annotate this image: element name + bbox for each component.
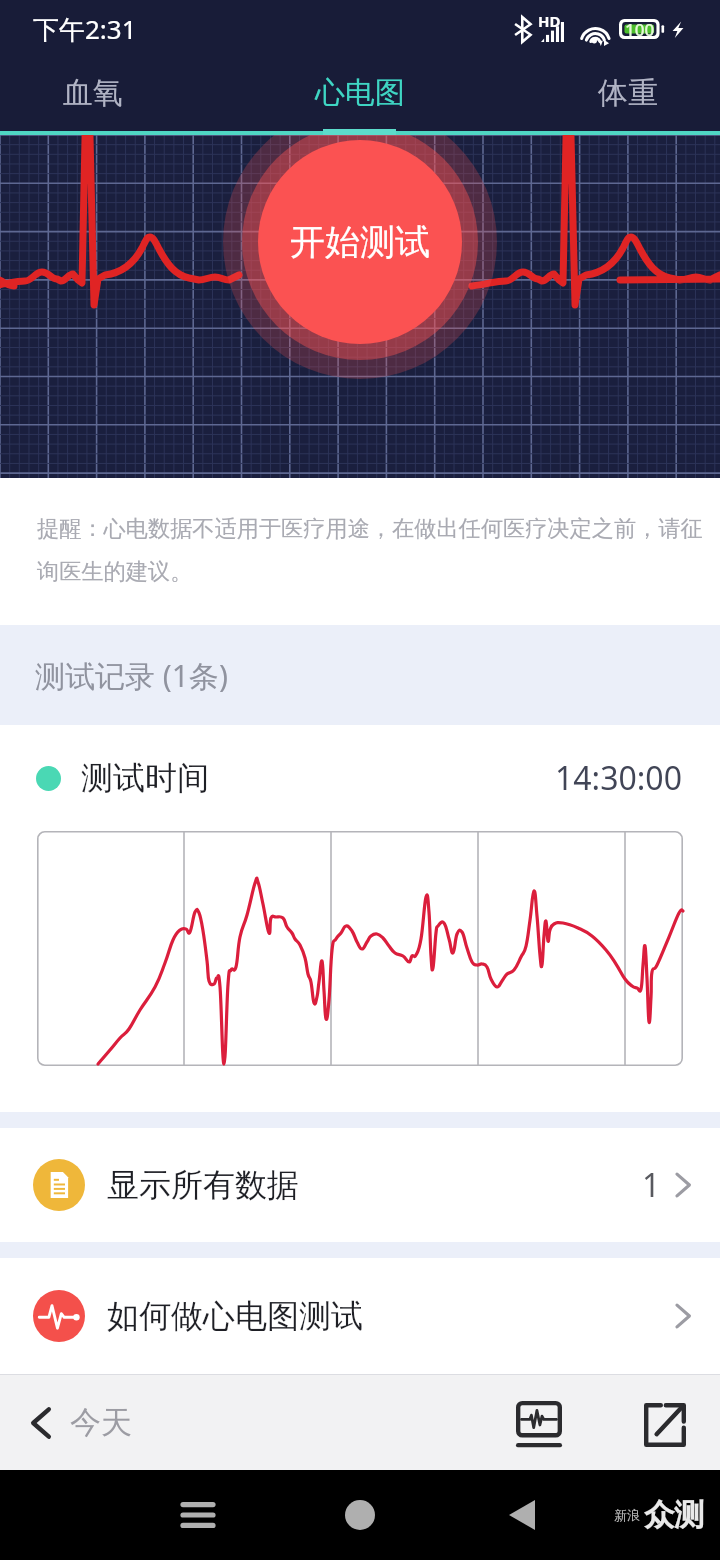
- staticText: 1: [642, 1163, 661, 1207]
- staticText: 血氧: [63, 74, 123, 112]
- staticText: 体重: [598, 74, 658, 112]
- button[interactable]: Share: [632, 1392, 698, 1458]
- staticText: 14:30:00: [555, 756, 682, 800]
- button[interactable]: 测试时间: [0, 725, 720, 831]
- staticText: 提醒：心电数据不适用于医疗用途，在做出任何医疗决定之前，请征询医生的建议。: [37, 515, 707, 586]
- button[interactable]: 血氧: [0, 58, 185, 127]
- button[interactable]: 如何做心电图测试: [0, 1258, 720, 1374]
- button[interactable]: 今天: [28, 1403, 132, 1442]
- button[interactable]: Recents: [165, 1482, 231, 1548]
- staticText: 众测: [644, 1496, 704, 1534]
- staticText: 显示所有数据: [107, 1165, 299, 1205]
- staticText: 100: [625, 18, 655, 41]
- button[interactable]: 显示所有数据: [0, 1128, 720, 1242]
- staticText: 测试时间: [81, 758, 209, 798]
- staticText: 如何做心电图测试: [107, 1296, 363, 1336]
- staticText: 心电图: [315, 74, 405, 112]
- staticText: 下午2:31: [33, 11, 137, 47]
- staticText: 新浪: [614, 1507, 640, 1523]
- button[interactable]: Home: [327, 1482, 393, 1548]
- button[interactable]: Back: [489, 1482, 555, 1548]
- staticText: 测试记录 (1条): [35, 655, 228, 696]
- staticText: HD: [538, 11, 561, 31]
- staticText: 今天: [70, 1403, 132, 1442]
- button[interactable]: 开始测试: [257, 139, 463, 345]
- button[interactable]: 体重: [535, 58, 720, 127]
- button[interactable]: ECG monitor: [506, 1392, 572, 1458]
- staticText: 开始测试: [290, 220, 430, 264]
- button[interactable]: 心电图: [240, 58, 480, 127]
